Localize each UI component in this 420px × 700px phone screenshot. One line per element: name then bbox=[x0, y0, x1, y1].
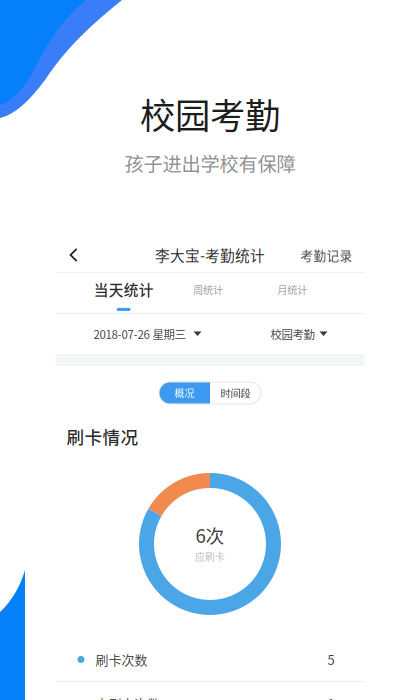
staticText: 孩子进出学校有保障 bbox=[124, 149, 295, 177]
button[interactable]: 月统计 bbox=[250, 273, 334, 313]
staticText: 考勤记录 bbox=[300, 246, 352, 264]
staticText: 未刷卡次数 bbox=[95, 694, 160, 700]
staticText: 校园考勤 bbox=[140, 88, 280, 139]
staticText: 6次 bbox=[195, 521, 224, 548]
staticText: 2018-07-26 星期三 bbox=[93, 326, 185, 342]
button[interactable]: Back bbox=[55, 238, 91, 272]
staticText: 月统计 bbox=[277, 282, 307, 297]
button[interactable]: 时间段 bbox=[210, 382, 261, 404]
staticText: 1 bbox=[327, 694, 334, 700]
button[interactable]: 校园考勤 bbox=[270, 314, 327, 354]
button[interactable]: 当天统计 bbox=[81, 273, 166, 313]
staticText: 刷卡情况 bbox=[66, 423, 138, 449]
button[interactable]: 周统计 bbox=[166, 273, 250, 313]
staticText: 刷卡次数 bbox=[95, 650, 147, 669]
staticText: 概况 bbox=[174, 386, 194, 400]
staticText: 李大宝-考勤统计 bbox=[155, 244, 265, 265]
staticText: 5 bbox=[327, 650, 334, 669]
button[interactable]: 考勤记录 bbox=[300, 238, 364, 272]
staticText: 校园考勤 bbox=[270, 326, 314, 342]
staticText: 当天统计 bbox=[94, 279, 154, 300]
button[interactable]: 2018-07-26 星期三 bbox=[93, 314, 201, 354]
staticText: 时间段 bbox=[220, 385, 250, 400]
button[interactable]: 概况 bbox=[159, 382, 210, 404]
staticText: 应刷卡 bbox=[195, 549, 225, 563]
staticText: 周统计 bbox=[193, 282, 223, 297]
